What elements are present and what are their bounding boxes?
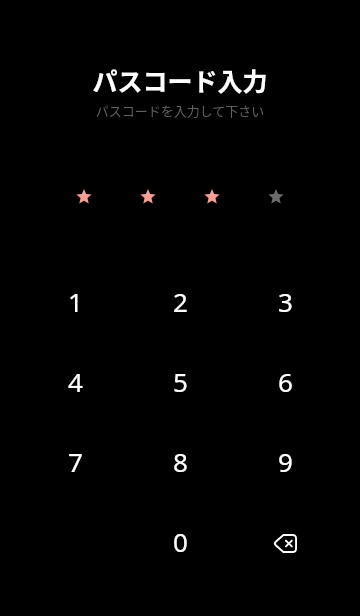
button[interactable]: 3: [233, 261, 338, 341]
button[interactable]: 2: [128, 261, 233, 341]
button[interactable]: 5: [128, 341, 233, 421]
staticText: 4: [68, 364, 83, 399]
staticText: 6: [278, 364, 293, 399]
button[interactable]: 6: [233, 341, 338, 421]
button[interactable]: 4: [23, 341, 128, 421]
staticText: 2: [173, 284, 188, 319]
staticText: 7: [68, 444, 83, 479]
staticText: 1: [68, 284, 83, 319]
staticText: パスコードを入力して下さい: [0, 101, 360, 120]
staticText: パスコード入力: [0, 62, 360, 98]
button[interactable]: 0: [128, 501, 233, 581]
staticText: 0: [173, 524, 188, 559]
button[interactable]: 1: [23, 261, 128, 341]
staticText: 8: [173, 444, 188, 479]
staticText: 3: [278, 284, 293, 319]
staticText: 9: [278, 444, 293, 479]
button[interactable]: 8: [128, 421, 233, 501]
button[interactable]: 7: [23, 421, 128, 501]
button[interactable]: Delete last digit: [233, 501, 338, 581]
button[interactable]: 9: [233, 421, 338, 501]
staticText: 5: [173, 364, 188, 399]
